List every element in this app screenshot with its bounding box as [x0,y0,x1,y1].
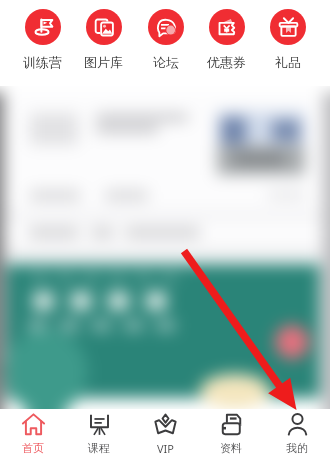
staticText: 优惠券 [207,54,246,70]
staticText: 论坛 [153,54,179,70]
button[interactable]: 我的 [264,409,330,458]
staticText: VIP [157,441,174,455]
button[interactable]: 图片库 [73,0,134,70]
staticText: 资料 [220,441,242,455]
button[interactable]: 论坛 [135,0,196,70]
other: Pointer [0,0,330,458]
button[interactable]: 课程 [66,409,132,458]
button[interactable]: VIP [132,409,198,458]
button[interactable]: 资料 [198,409,264,458]
button[interactable]: 优惠券 [196,0,257,70]
staticText: 我的 [286,441,308,455]
staticText: 图片库 [84,54,123,70]
button[interactable]: 首页 [0,409,66,458]
staticText: 训练营 [23,54,62,70]
staticText: 礼品 [275,54,301,70]
button[interactable]: 训练营 [12,0,73,70]
button[interactable]: 礼品 [257,0,318,70]
staticText: 课程 [88,441,110,455]
staticText: 首页 [22,441,44,455]
